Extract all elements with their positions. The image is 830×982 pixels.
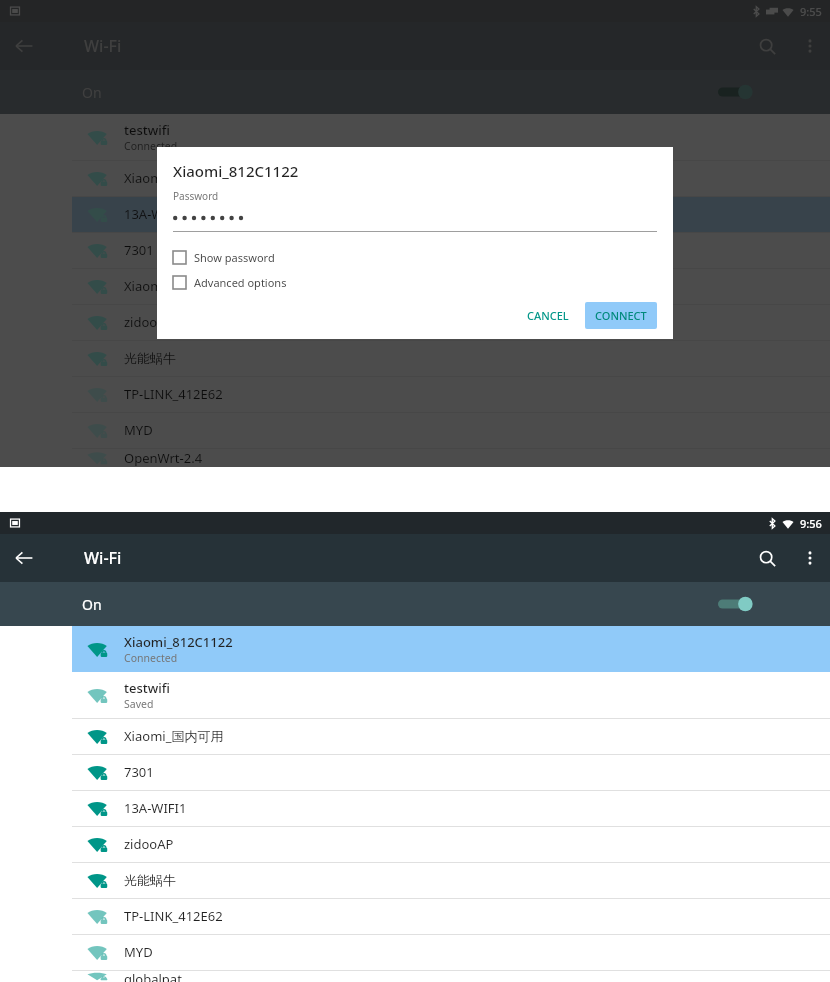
button[interactable]: TP-LINK_412E62	[72, 898, 830, 934]
staticText: Wi-Fi	[84, 547, 122, 569]
staticText: Xiaomi_国内可用	[124, 727, 224, 745]
staticText: 9:56	[800, 516, 822, 531]
staticText: On	[82, 83, 102, 102]
button[interactable]: globalpat	[72, 970, 830, 982]
staticText: testwifi	[124, 679, 170, 697]
button[interactable]: zidooAP	[72, 304, 830, 340]
staticText: Saved	[124, 697, 154, 711]
staticText: Password	[173, 189, 219, 203]
button[interactable]: 光能蜗牛	[72, 862, 830, 898]
staticText: Connected	[124, 139, 178, 153]
staticText: CONNECT	[595, 308, 647, 323]
button[interactable]: Back	[0, 534, 48, 582]
button[interactable]: Search	[744, 535, 790, 581]
button[interactable]: Show password	[173, 250, 275, 265]
button[interactable]: Advanced options	[173, 275, 287, 290]
button[interactable]: CONNECT	[585, 302, 657, 329]
button[interactable]: TP-LINK_412E62	[72, 376, 830, 412]
staticText: 7301	[124, 241, 154, 259]
staticText: Xiaomi_国内可用	[124, 277, 224, 295]
staticText: Wi-Fi	[84, 35, 122, 57]
button[interactable]: zidooAP	[72, 826, 830, 862]
button[interactable]: 7301	[72, 232, 830, 268]
staticText: Xiaomi_812C1122	[124, 633, 233, 651]
staticText: MYD	[124, 421, 153, 439]
button[interactable]: 13A-WIFI1	[72, 790, 830, 826]
staticText: 光能蜗牛	[124, 872, 176, 888]
button[interactable]: 光能蜗牛	[72, 340, 830, 376]
staticText: testwifi	[124, 121, 170, 139]
staticText: MYD	[124, 943, 153, 961]
staticText: 光能蜗牛	[124, 350, 176, 366]
button[interactable]: On	[0, 582, 830, 626]
button[interactable]: Xiaomi_812C1122	[72, 160, 830, 196]
staticText: 13A-WIFI1	[124, 205, 187, 223]
button[interactable]: testwifi	[72, 114, 830, 160]
staticText: Connected	[124, 651, 178, 665]
staticText: 7301	[124, 763, 154, 781]
staticText: 9:55	[800, 4, 822, 19]
button[interactable]: More options	[790, 538, 830, 578]
button[interactable]: 7301	[72, 754, 830, 790]
staticText: OpenWrt-2.4	[124, 449, 203, 467]
staticText: Xiaomi_812C1122	[124, 169, 232, 187]
staticText: 13A-WIFI1	[124, 799, 187, 817]
staticText: Advanced options	[194, 275, 287, 290]
button[interactable]: Search	[744, 23, 790, 69]
staticText: zidooAP	[124, 835, 174, 853]
staticText: globalpat	[124, 970, 182, 982]
button[interactable]: 13A-WIFI1	[72, 196, 830, 232]
staticText: CANCEL	[527, 308, 569, 323]
staticText: On	[82, 595, 102, 614]
button[interactable]: MYD	[72, 934, 830, 970]
button[interactable]: OpenWrt-2.4	[72, 448, 830, 467]
staticText: TP-LINK_412E62	[124, 385, 223, 403]
button[interactable]: Xiaomi_812C1122	[72, 626, 830, 672]
staticText: TP-LINK_412E62	[124, 907, 223, 925]
button[interactable]: Back	[0, 22, 48, 70]
staticText: Show password	[194, 250, 275, 265]
button[interactable]: Xiaomi_国内可用	[72, 718, 830, 754]
staticText: Xiaomi_812C1122	[173, 161, 299, 181]
button[interactable]: Xiaomi_国内可用	[72, 268, 830, 304]
button[interactable]	[173, 209, 657, 227]
button[interactable]: CANCEL	[517, 302, 579, 329]
staticText: zidooAP	[124, 313, 174, 331]
button[interactable]: testwifi	[72, 672, 830, 718]
